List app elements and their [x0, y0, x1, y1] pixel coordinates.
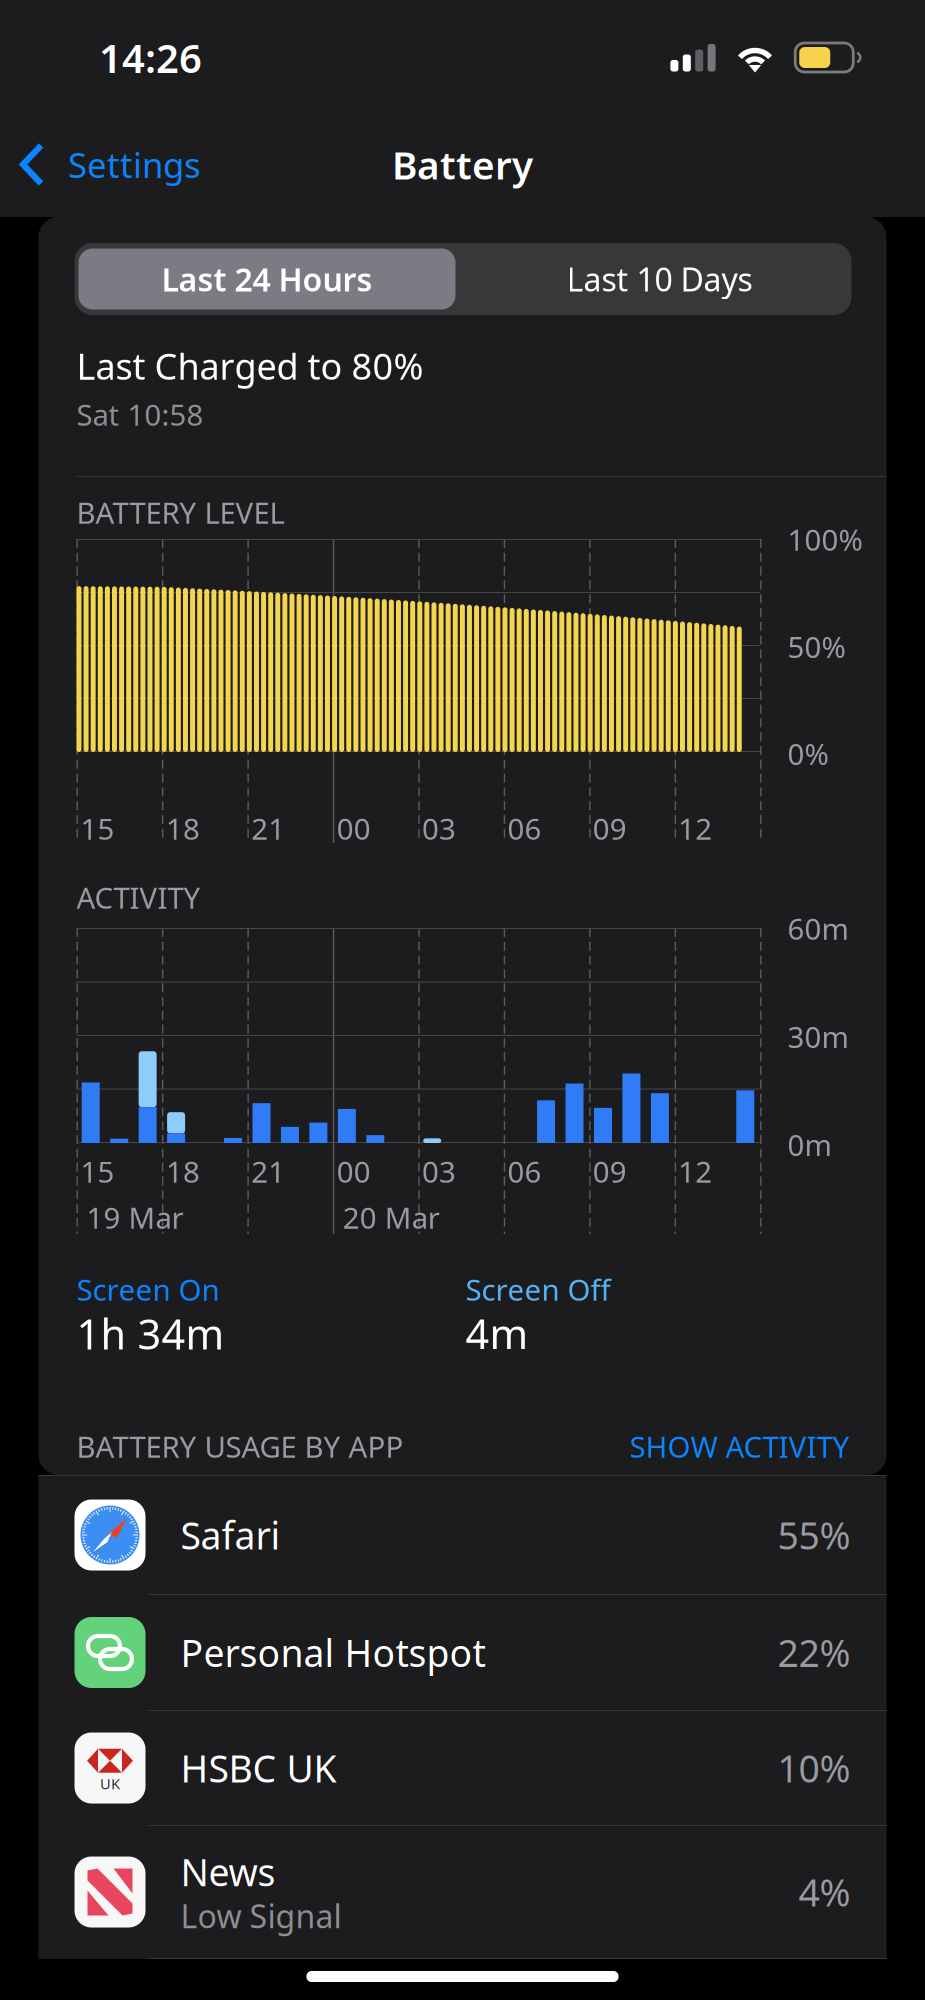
- staticText: Last Charged to 80%: [76, 342, 423, 390]
- staticText: 20 Mar: [343, 1198, 440, 1237]
- staticText: HSBC UK: [180, 1743, 336, 1793]
- staticText: 22%: [777, 1628, 850, 1677]
- staticText: SHOW ACTIVITY: [629, 1427, 849, 1466]
- staticText: 00: [337, 809, 371, 848]
- staticText: 100%: [787, 520, 862, 559]
- button[interactable]: News: [38, 1826, 886, 1958]
- staticText: BATTERY LEVEL: [76, 493, 284, 532]
- staticText: 03: [422, 1152, 456, 1191]
- staticText: 55%: [777, 1510, 850, 1560]
- staticText: 21: [251, 1152, 285, 1191]
- staticText: 12: [678, 809, 712, 848]
- staticText: 15: [80, 1152, 114, 1191]
- staticText: Settings: [68, 141, 201, 187]
- staticText: 60m: [787, 909, 848, 948]
- staticText: 4%: [798, 1867, 850, 1917]
- button[interactable]: Last 10 Days: [465, 248, 853, 309]
- staticText: 14:26: [99, 31, 202, 84]
- staticText: 03: [422, 809, 456, 848]
- staticText: 09: [593, 1152, 627, 1191]
- staticText: Personal Hotspot: [180, 1628, 485, 1677]
- staticText: 0m: [787, 1125, 831, 1164]
- staticText: 15: [80, 809, 114, 848]
- staticText: Last 10 Days: [566, 258, 752, 300]
- staticText: 18: [166, 1152, 200, 1191]
- button[interactable]: Last 24 Hours: [78, 248, 455, 309]
- staticText: ACTIVITY: [76, 878, 200, 917]
- staticText: 30m: [787, 1017, 848, 1056]
- staticText: Safari: [180, 1510, 280, 1560]
- staticText: UK: [100, 1774, 120, 1793]
- staticText: 12: [678, 1152, 712, 1191]
- staticText: 10%: [777, 1743, 850, 1793]
- staticText: 50%: [787, 627, 845, 666]
- staticText: 4m: [465, 1306, 528, 1361]
- button[interactable]: Personal Hotspot: [38, 1595, 886, 1710]
- staticText: 21: [251, 809, 285, 848]
- staticText: BATTERY USAGE BY APP: [76, 1427, 403, 1466]
- staticText: 0%: [787, 734, 828, 773]
- staticText: News: [180, 1847, 275, 1897]
- staticText: 09: [593, 809, 627, 848]
- staticText: 18: [166, 809, 200, 848]
- staticText: Screen On: [76, 1270, 219, 1309]
- button[interactable]: SHOW ACTIVITY: [629, 1427, 849, 1466]
- staticText: Last 24 Hours: [161, 258, 372, 300]
- staticText: Sat 10:58: [76, 395, 203, 434]
- staticText: 19 Mar: [86, 1198, 183, 1237]
- button[interactable]: Safari: [38, 1476, 886, 1594]
- button[interactable]: Settings: [0, 129, 215, 199]
- staticText: 1h 34m: [76, 1306, 224, 1361]
- staticText: Low Signal: [180, 1894, 341, 1937]
- staticText: 06: [507, 809, 541, 848]
- staticText: 06: [507, 1152, 541, 1191]
- staticText: Battery: [392, 139, 533, 190]
- staticText: 00: [337, 1152, 371, 1191]
- button[interactable]: UK: [38, 1711, 886, 1825]
- staticText: Screen Off: [465, 1270, 610, 1309]
